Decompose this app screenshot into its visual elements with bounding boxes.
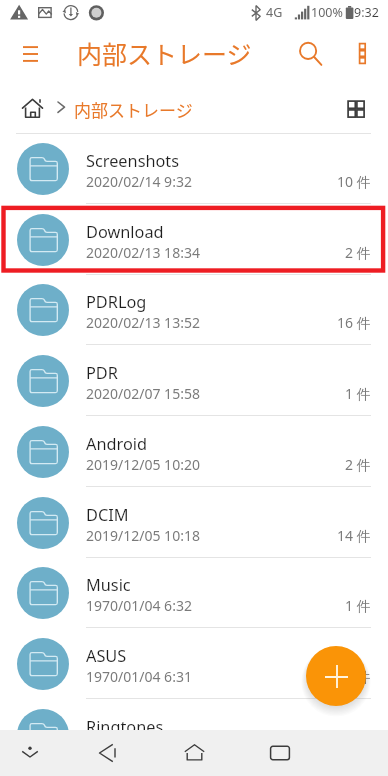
button[interactable]: Screenshots xyxy=(0,133,388,204)
button[interactable]: Hide keyboard xyxy=(8,730,52,776)
staticText: Music xyxy=(86,574,131,596)
staticText: 2020/02/07 15:58 xyxy=(86,384,200,403)
staticText: ASUS xyxy=(86,645,127,667)
button[interactable]: Recents xyxy=(258,730,302,776)
button[interactable]: Home xyxy=(10,87,54,129)
staticText: 9:32 xyxy=(354,4,379,21)
button[interactable]: Android xyxy=(0,416,388,487)
staticText: Ringtones xyxy=(86,716,164,730)
staticText: Download xyxy=(86,221,164,243)
staticText: PDRLog xyxy=(86,291,147,313)
button[interactable]: PDRLog xyxy=(0,274,388,345)
button[interactable]: Search xyxy=(288,32,332,76)
staticText: 10 件 xyxy=(337,172,371,191)
staticText: 内部ストレージ xyxy=(77,35,252,71)
staticText: 2019/12/05 10:18 xyxy=(86,526,200,545)
button[interactable]: Music xyxy=(0,557,388,628)
staticText: 1 件 xyxy=(345,596,371,615)
staticText: 1970/01/04 6:31 xyxy=(86,667,192,686)
staticText: 2020/02/13 18:34 xyxy=(86,243,200,262)
staticText: 1 件 xyxy=(345,667,371,686)
button[interactable]: ASUS xyxy=(0,628,388,699)
staticText: 2020/02/14 9:32 xyxy=(86,172,192,191)
button[interactable]: Menu xyxy=(8,32,52,76)
staticText: 1970/01/04 6:32 xyxy=(86,596,192,615)
staticText: 4G xyxy=(266,4,283,21)
staticText: 2020/02/13 13:52 xyxy=(86,313,200,332)
button[interactable]: DCIM xyxy=(0,487,388,558)
staticText: 2 件 xyxy=(345,455,371,474)
staticText: 14 件 xyxy=(337,526,371,545)
button[interactable]: Add xyxy=(306,646,366,706)
button[interactable]: Ringtones xyxy=(0,699,388,730)
staticText: DCIM xyxy=(86,504,129,526)
staticText: 16 件 xyxy=(337,313,371,332)
staticText: 100% xyxy=(311,4,343,21)
staticText: 2 件 xyxy=(345,243,371,262)
button[interactable]: PDR xyxy=(0,345,388,416)
staticText: Android xyxy=(86,433,147,455)
button[interactable]: Grid view xyxy=(333,86,377,130)
staticText: PDR xyxy=(86,362,118,384)
button[interactable]: Back xyxy=(86,730,130,776)
button[interactable]: More options xyxy=(340,32,384,76)
button[interactable]: 内部ストレージ xyxy=(74,97,193,122)
button[interactable]: Home xyxy=(172,730,216,776)
button[interactable]: Download xyxy=(0,204,388,275)
staticText: 1 件 xyxy=(345,384,371,403)
staticText: 2019/12/05 10:20 xyxy=(86,455,200,474)
staticText: Screenshots xyxy=(86,150,180,172)
